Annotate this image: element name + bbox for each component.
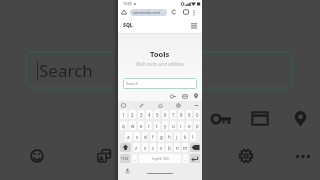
staticText: Search: [39, 59, 93, 82]
button[interactable]: 8: [178, 110, 184, 119]
button[interactable]: Reload: [171, 9, 177, 15]
button[interactable]: x: [142, 143, 148, 152]
button[interactable]: i: [178, 121, 184, 130]
staticText: d: [144, 134, 147, 140]
staticText: 2: [131, 112, 134, 118]
button[interactable]: Search: [123, 78, 197, 89]
button[interactable]: u: [170, 121, 176, 130]
button[interactable]: j: [174, 132, 180, 141]
button[interactable]: Keyboard tool: [139, 103, 144, 108]
button[interactable]: v: [158, 143, 164, 152]
staticText: 10:05: [123, 1, 132, 6]
staticText: 3: [140, 112, 143, 118]
button[interactable]: 3: [138, 110, 144, 119]
button[interactable]: More options: [295, 150, 311, 163]
staticText: z: [135, 145, 138, 151]
staticText: k: [184, 134, 187, 140]
button[interactable]: Saved addresses: [293, 110, 308, 127]
staticText: c: [152, 145, 155, 151]
staticText: 1: [122, 112, 125, 118]
button[interactable]: 5: [154, 110, 160, 119]
staticText: 9: [188, 112, 191, 118]
button[interactable]: m: [182, 143, 188, 152]
button[interactable]: h: [166, 132, 172, 141]
button[interactable]: More: [192, 9, 196, 16]
button[interactable]: o: [186, 121, 192, 130]
staticText: r: [148, 123, 150, 129]
button[interactable]: n: [174, 143, 180, 152]
button[interactable]: Keyboard tool: [176, 103, 181, 108]
button[interactable]: Payment cards: [251, 111, 269, 126]
button[interactable]: Search: [25, 51, 293, 89]
button[interactable]: Keyboard tool: [158, 103, 163, 108]
button[interactable]: Shift: [120, 143, 131, 152]
button[interactable]: .: [183, 154, 188, 163]
staticText: Web tools and utilities: [136, 61, 184, 67]
staticText: b: [168, 145, 171, 151]
staticText: q: [122, 123, 125, 129]
staticText: English (UK): [152, 157, 169, 161]
button[interactable]: Card suggestion: [182, 94, 188, 99]
button[interactable]: Translate: [97, 149, 111, 163]
button[interactable]: k: [182, 132, 188, 141]
button[interactable]: Backspace: [190, 143, 200, 152]
staticText: w: [131, 123, 135, 129]
button[interactable]: English (UK): [139, 154, 181, 163]
staticText: s: [136, 134, 139, 140]
button[interactable]: Saved passwords: [211, 112, 231, 126]
staticText: 5: [156, 112, 159, 118]
button[interactable]: Emoji: [30, 149, 44, 163]
staticText: Search: [126, 81, 139, 86]
staticText: x: [144, 145, 147, 151]
button[interactable]: ,: [132, 154, 137, 163]
button[interactable]: Tabs: [183, 9, 189, 15]
button[interactable]: 1: [120, 110, 127, 119]
button[interactable]: s: [134, 132, 140, 141]
button[interactable]: Keyboard tool: [121, 103, 126, 108]
staticText: Tools: [150, 49, 170, 59]
button[interactable]: Password suggestion: [170, 94, 176, 99]
staticText: p: [196, 123, 199, 129]
staticText: 0: [196, 112, 199, 118]
staticText: sqlonlineide.com/t: [133, 11, 161, 15]
button[interactable]: q: [120, 121, 127, 130]
button[interactable]: Voice input: [125, 168, 130, 173]
staticText: 7: [172, 112, 175, 118]
button[interactable]: f: [150, 132, 156, 141]
button[interactable]: r: [146, 121, 152, 130]
button[interactable]: e: [138, 121, 144, 130]
button[interactable]: 2: [129, 110, 136, 119]
button[interactable]: Menu: [191, 23, 197, 28]
button[interactable]: g: [158, 132, 164, 141]
button[interactable]: 0: [194, 110, 200, 119]
button[interactable]: b: [166, 143, 172, 152]
button[interactable]: sqlonlineide.com/t: [130, 9, 167, 16]
button[interactable]: Address suggestion: [194, 93, 198, 99]
button[interactable]: y: [162, 121, 168, 130]
button[interactable]: t: [154, 121, 160, 130]
button[interactable]: 9: [186, 110, 192, 119]
button[interactable]: c: [150, 143, 156, 152]
button[interactable]: p: [194, 121, 200, 130]
button[interactable]: z: [133, 143, 140, 152]
button[interactable]: 6: [162, 110, 168, 119]
staticText: a: [127, 134, 130, 140]
button[interactable]: Home: [121, 9, 127, 15]
button[interactable]: ?123: [120, 154, 130, 163]
button[interactable]: 7: [170, 110, 176, 119]
staticText: v: [160, 145, 163, 151]
staticText: 6: [164, 112, 167, 118]
staticText: l: [192, 134, 194, 140]
button[interactable]: 4: [146, 110, 152, 119]
button[interactable]: d: [142, 132, 148, 141]
button[interactable]: l: [190, 132, 196, 141]
button[interactable]: Keyboard tool: [194, 103, 199, 108]
button[interactable]: a: [125, 132, 132, 141]
staticText: o: [188, 123, 191, 129]
button[interactable]: Enter: [190, 154, 200, 163]
button[interactable]: w: [129, 121, 136, 130]
staticText: m: [183, 145, 188, 151]
staticText: i: [180, 123, 182, 129]
staticText: ?123: [121, 156, 129, 161]
button[interactable]: Settings: [239, 149, 253, 163]
